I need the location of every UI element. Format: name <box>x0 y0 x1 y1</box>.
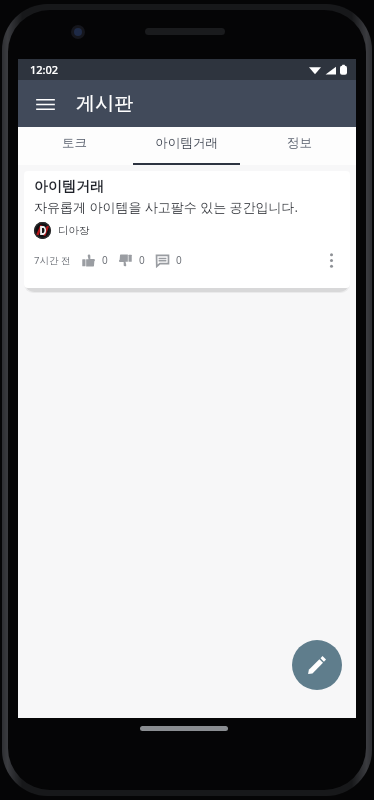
staticText: 게시판 <box>76 92 133 116</box>
staticText: 정보 <box>287 135 312 151</box>
staticText: 디아장 <box>58 224 90 237</box>
button[interactable]: Open navigation menu <box>26 85 64 123</box>
staticText: 아이템거래 <box>155 135 218 151</box>
staticText: 12:02 <box>30 62 59 77</box>
button[interactable]: 아이템거래 <box>130 127 243 165</box>
staticText: 0 <box>139 253 145 267</box>
button[interactable]: 정보 <box>243 127 356 165</box>
staticText: 0 <box>176 253 182 267</box>
staticText: 7시간 전 <box>34 254 71 267</box>
button[interactable]: 아이템거래 <box>24 171 350 288</box>
staticText: 토크 <box>62 135 87 151</box>
button[interactable]: More options <box>320 249 342 271</box>
button[interactable]: Write new post <box>292 640 342 690</box>
staticText: 아이템거래 <box>34 178 104 196</box>
staticText: 자유롭게 아이템을 사고팔수 있는 공간입니다. <box>34 198 299 216</box>
staticText: 0 <box>102 253 108 267</box>
button[interactable]: 토크 <box>18 127 130 165</box>
